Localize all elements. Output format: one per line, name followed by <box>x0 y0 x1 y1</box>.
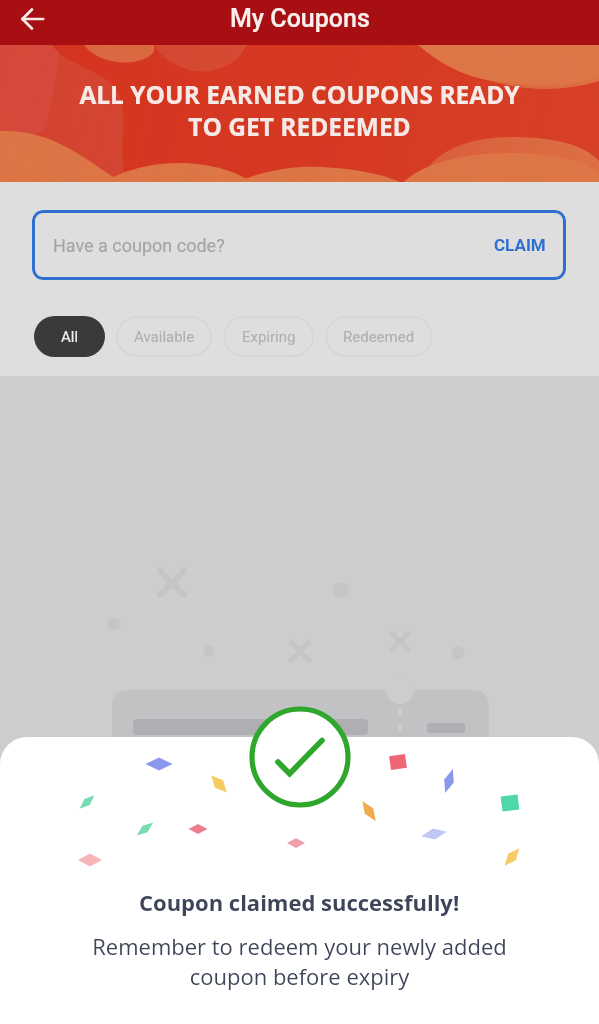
staticText: Expiring <box>242 328 296 346</box>
staticText: Coupon claimed successfully! <box>139 887 460 917</box>
staticText: Redeemed <box>343 328 415 346</box>
staticText: All <box>61 328 79 346</box>
button[interactable]: All <box>34 316 105 357</box>
button[interactable]: Expiring <box>223 316 314 357</box>
staticText: Have a coupon code? <box>53 235 225 256</box>
staticText: Available <box>134 328 195 346</box>
button[interactable]: Redeemed <box>325 316 433 357</box>
button[interactable]: Back <box>12 3 52 43</box>
button[interactable]: CLAIM <box>474 217 566 273</box>
staticText: CLAIM <box>494 235 546 255</box>
button[interactable]: Available <box>116 316 212 357</box>
staticText: My Coupons <box>230 4 370 33</box>
staticText: ALL YOUR EARNED COUPONS READY TO GET RED… <box>79 78 520 143</box>
staticText: Remember to redeem your newly added coup… <box>92 931 507 991</box>
